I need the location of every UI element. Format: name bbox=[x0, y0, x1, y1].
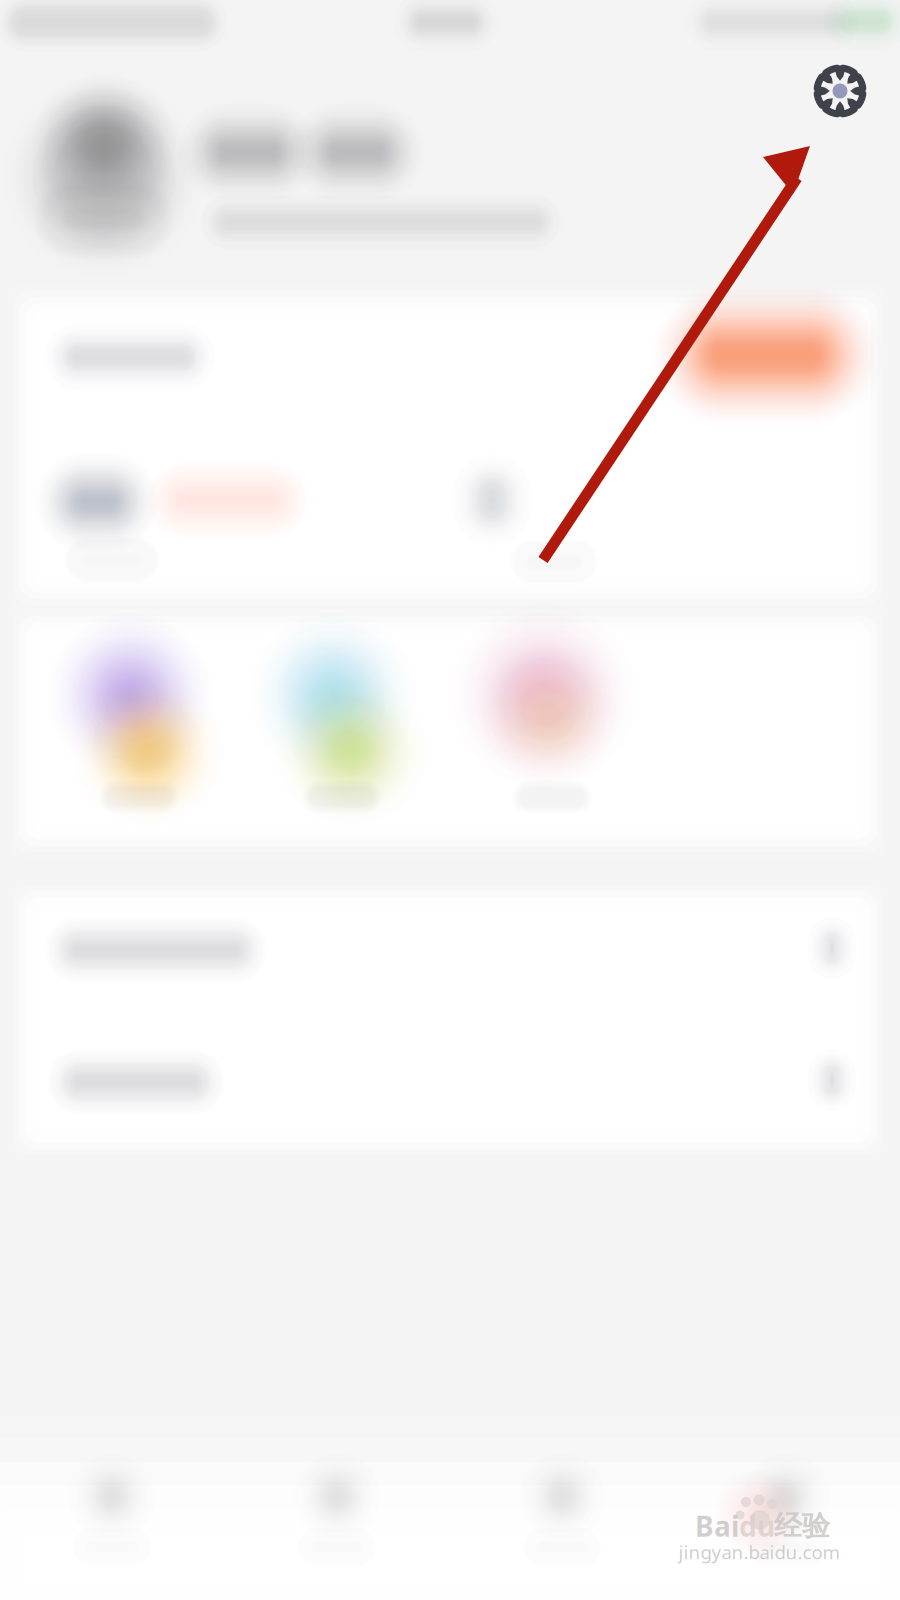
staticText: Bai bbox=[695, 1507, 739, 1545]
button[interactable]: Tab bbox=[247, 1445, 427, 1595]
button[interactable]: Settings bbox=[797, 48, 883, 134]
button[interactable]: Shortcut bbox=[491, 613, 691, 843]
button[interactable]: Tab bbox=[697, 1445, 877, 1595]
staticText: jingyan.baidu.com bbox=[678, 1540, 839, 1564]
button[interactable]: Tab bbox=[472, 1445, 652, 1595]
button[interactable]: Tab bbox=[22, 1445, 202, 1595]
staticText: du bbox=[739, 1507, 775, 1545]
staticText: 经验 bbox=[774, 1509, 830, 1543]
button[interactable]: Shortcut bbox=[281, 613, 481, 843]
button[interactable]: Shortcut bbox=[78, 613, 278, 843]
